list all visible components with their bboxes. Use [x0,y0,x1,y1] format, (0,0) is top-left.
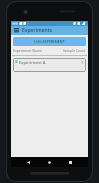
button[interactable]: LOG EXPERIMENT [13,37,86,46]
button[interactable]: Open navigation drawer [13,27,20,34]
staticText: Experiments [22,27,53,34]
staticText: Experiment Name [13,48,42,53]
staticText: Sample Count [63,48,86,53]
staticText: LOG EXPERIMENT [34,39,65,44]
button[interactable]: Experiment A [13,58,86,72]
button[interactable]: Back [25,159,32,166]
button[interactable]: Home [46,159,53,166]
staticText: Experiment A [19,60,46,66]
staticText: 1 [81,60,84,66]
button[interactable]: Recent apps [67,159,74,166]
